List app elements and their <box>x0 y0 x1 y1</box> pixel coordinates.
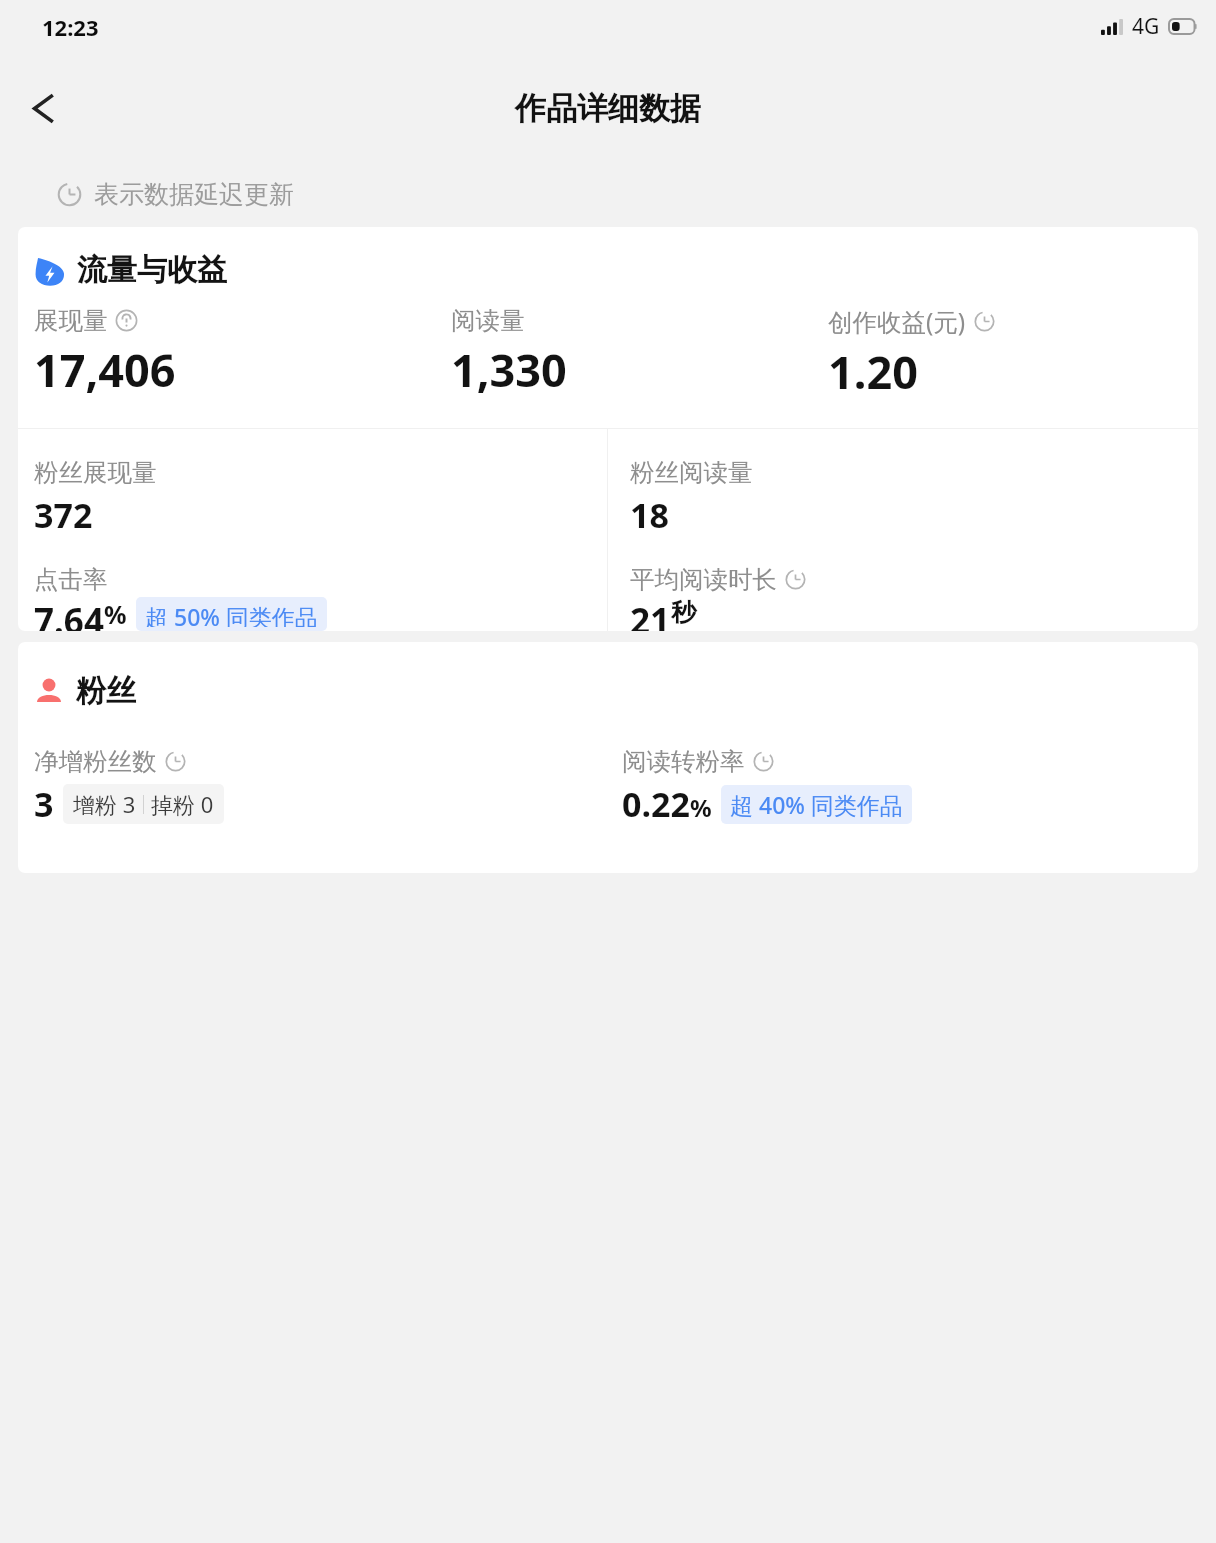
staticText: 流量与收益 <box>77 251 227 289</box>
staticText: 平均阅读时长 <box>630 564 777 595</box>
staticText: 秒 <box>671 597 696 628</box>
staticText: 阅读量 <box>451 305 525 336</box>
staticText: 18 <box>630 492 669 538</box>
staticText: 超 50% 同类作品 <box>145 601 318 627</box>
staticText: 372 <box>34 492 93 538</box>
staticText: 1,330 <box>451 339 567 400</box>
staticText: 7.64 <box>34 597 104 631</box>
staticText: 超 40% 同类作品 <box>730 789 903 820</box>
staticText: 净增粉丝数 <box>34 746 157 777</box>
staticText: 21 <box>630 597 671 631</box>
staticText: 创作收益(元) <box>828 305 966 338</box>
staticText: 4G <box>1132 12 1160 41</box>
staticText: 12:23 <box>42 12 99 42</box>
staticText: 3 <box>34 781 54 827</box>
staticText: % <box>104 597 127 628</box>
staticText: 作品详细数据 <box>515 89 701 128</box>
staticText: 0.22 <box>622 781 690 827</box>
button[interactable]: 返回 <box>10 75 76 141</box>
staticText: % <box>690 791 712 824</box>
staticText: 点击率 <box>34 564 108 595</box>
staticText: 1.20 <box>828 341 918 402</box>
staticText: 阅读转粉率 <box>622 746 745 777</box>
staticText: 粉丝展现量 <box>34 457 157 488</box>
staticText: 粉丝 <box>76 672 136 710</box>
staticText: 粉丝阅读量 <box>630 457 753 488</box>
staticText: 增粉 3 <box>73 789 136 819</box>
staticText: 展现量 <box>34 305 108 336</box>
staticText: 掉粉 0 <box>151 789 214 819</box>
staticText: 17,406 <box>34 339 176 400</box>
staticText: 表示数据延迟更新 <box>94 179 294 210</box>
